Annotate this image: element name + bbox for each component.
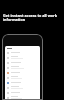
button[interactable] bbox=[7, 95, 40, 100]
staticText: Get instant access to all work informati… bbox=[3, 13, 61, 22]
button[interactable] bbox=[7, 85, 40, 90]
button[interactable] bbox=[7, 75, 40, 80]
button[interactable] bbox=[7, 80, 40, 85]
button[interactable] bbox=[7, 60, 40, 65]
button[interactable] bbox=[7, 90, 40, 95]
button[interactable] bbox=[7, 55, 40, 60]
button[interactable] bbox=[7, 65, 40, 70]
button[interactable] bbox=[7, 50, 40, 55]
button[interactable] bbox=[7, 70, 40, 75]
